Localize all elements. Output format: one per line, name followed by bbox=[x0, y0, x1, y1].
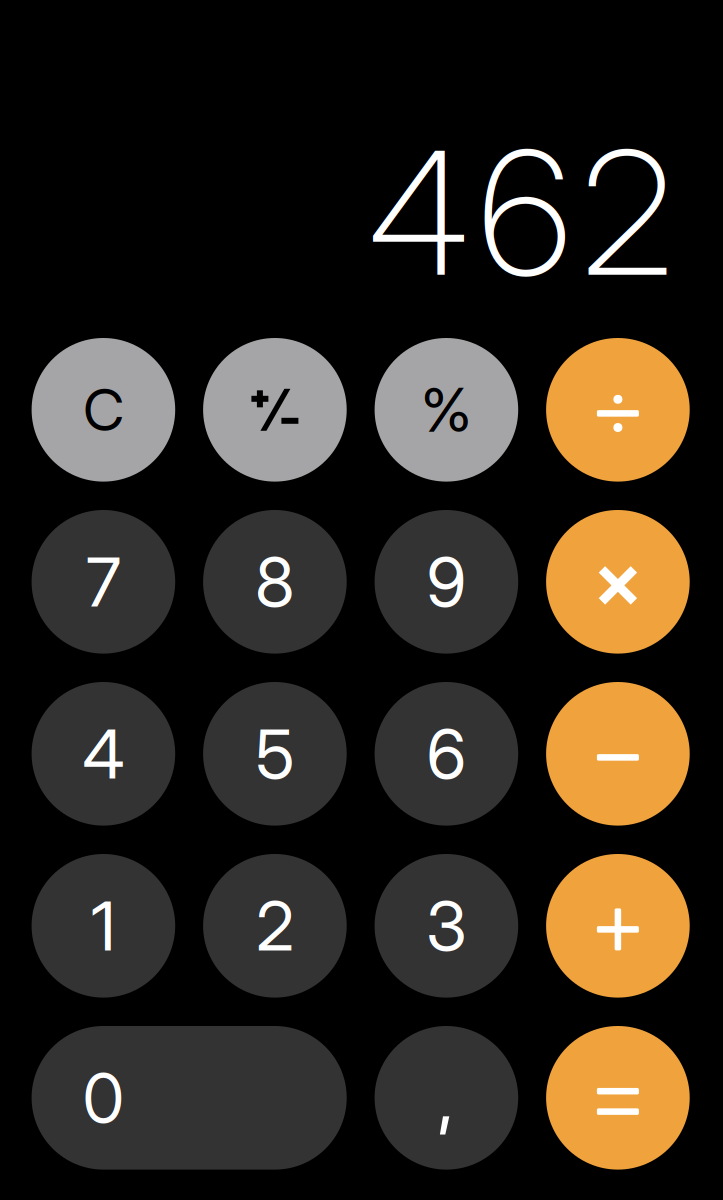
button[interactable]: 2 bbox=[203, 854, 347, 998]
staticText: 462 bbox=[368, 109, 674, 316]
staticText: 2 bbox=[256, 885, 294, 967]
staticText: % bbox=[421, 373, 472, 446]
button[interactable]: 6 bbox=[375, 682, 518, 826]
button[interactable]: 5 bbox=[203, 682, 347, 826]
staticText: 6 bbox=[426, 713, 466, 795]
staticText: 8 bbox=[255, 541, 295, 623]
staticText: 3 bbox=[426, 885, 467, 967]
button[interactable]: 7 bbox=[32, 510, 175, 654]
button[interactable]: Multiply bbox=[546, 510, 690, 654]
button[interactable]: 0 bbox=[32, 1026, 347, 1170]
staticText: 7 bbox=[86, 541, 121, 623]
button[interactable]: Toggle sign bbox=[203, 338, 347, 482]
button[interactable]: Subtract bbox=[546, 682, 690, 826]
staticText: 0 bbox=[82, 1057, 124, 1139]
button[interactable]: Divide bbox=[546, 338, 690, 482]
button[interactable]: % bbox=[375, 338, 518, 482]
button[interactable]: 4 bbox=[32, 682, 175, 826]
button[interactable]: 8 bbox=[203, 510, 347, 654]
staticText: 5 bbox=[255, 713, 294, 795]
staticText: 9 bbox=[426, 541, 466, 623]
staticText: C bbox=[83, 375, 124, 444]
button[interactable]: Equals bbox=[546, 1026, 690, 1170]
staticText: 4 bbox=[82, 713, 124, 795]
button[interactable]: C bbox=[32, 338, 175, 482]
button[interactable]: 9 bbox=[375, 510, 518, 654]
button[interactable]: 3 bbox=[375, 854, 518, 998]
button[interactable]: 1 bbox=[32, 854, 175, 998]
staticText: 1 bbox=[91, 885, 116, 967]
button[interactable]: Decimal separator bbox=[375, 1026, 518, 1170]
button[interactable]: Add bbox=[546, 854, 690, 998]
